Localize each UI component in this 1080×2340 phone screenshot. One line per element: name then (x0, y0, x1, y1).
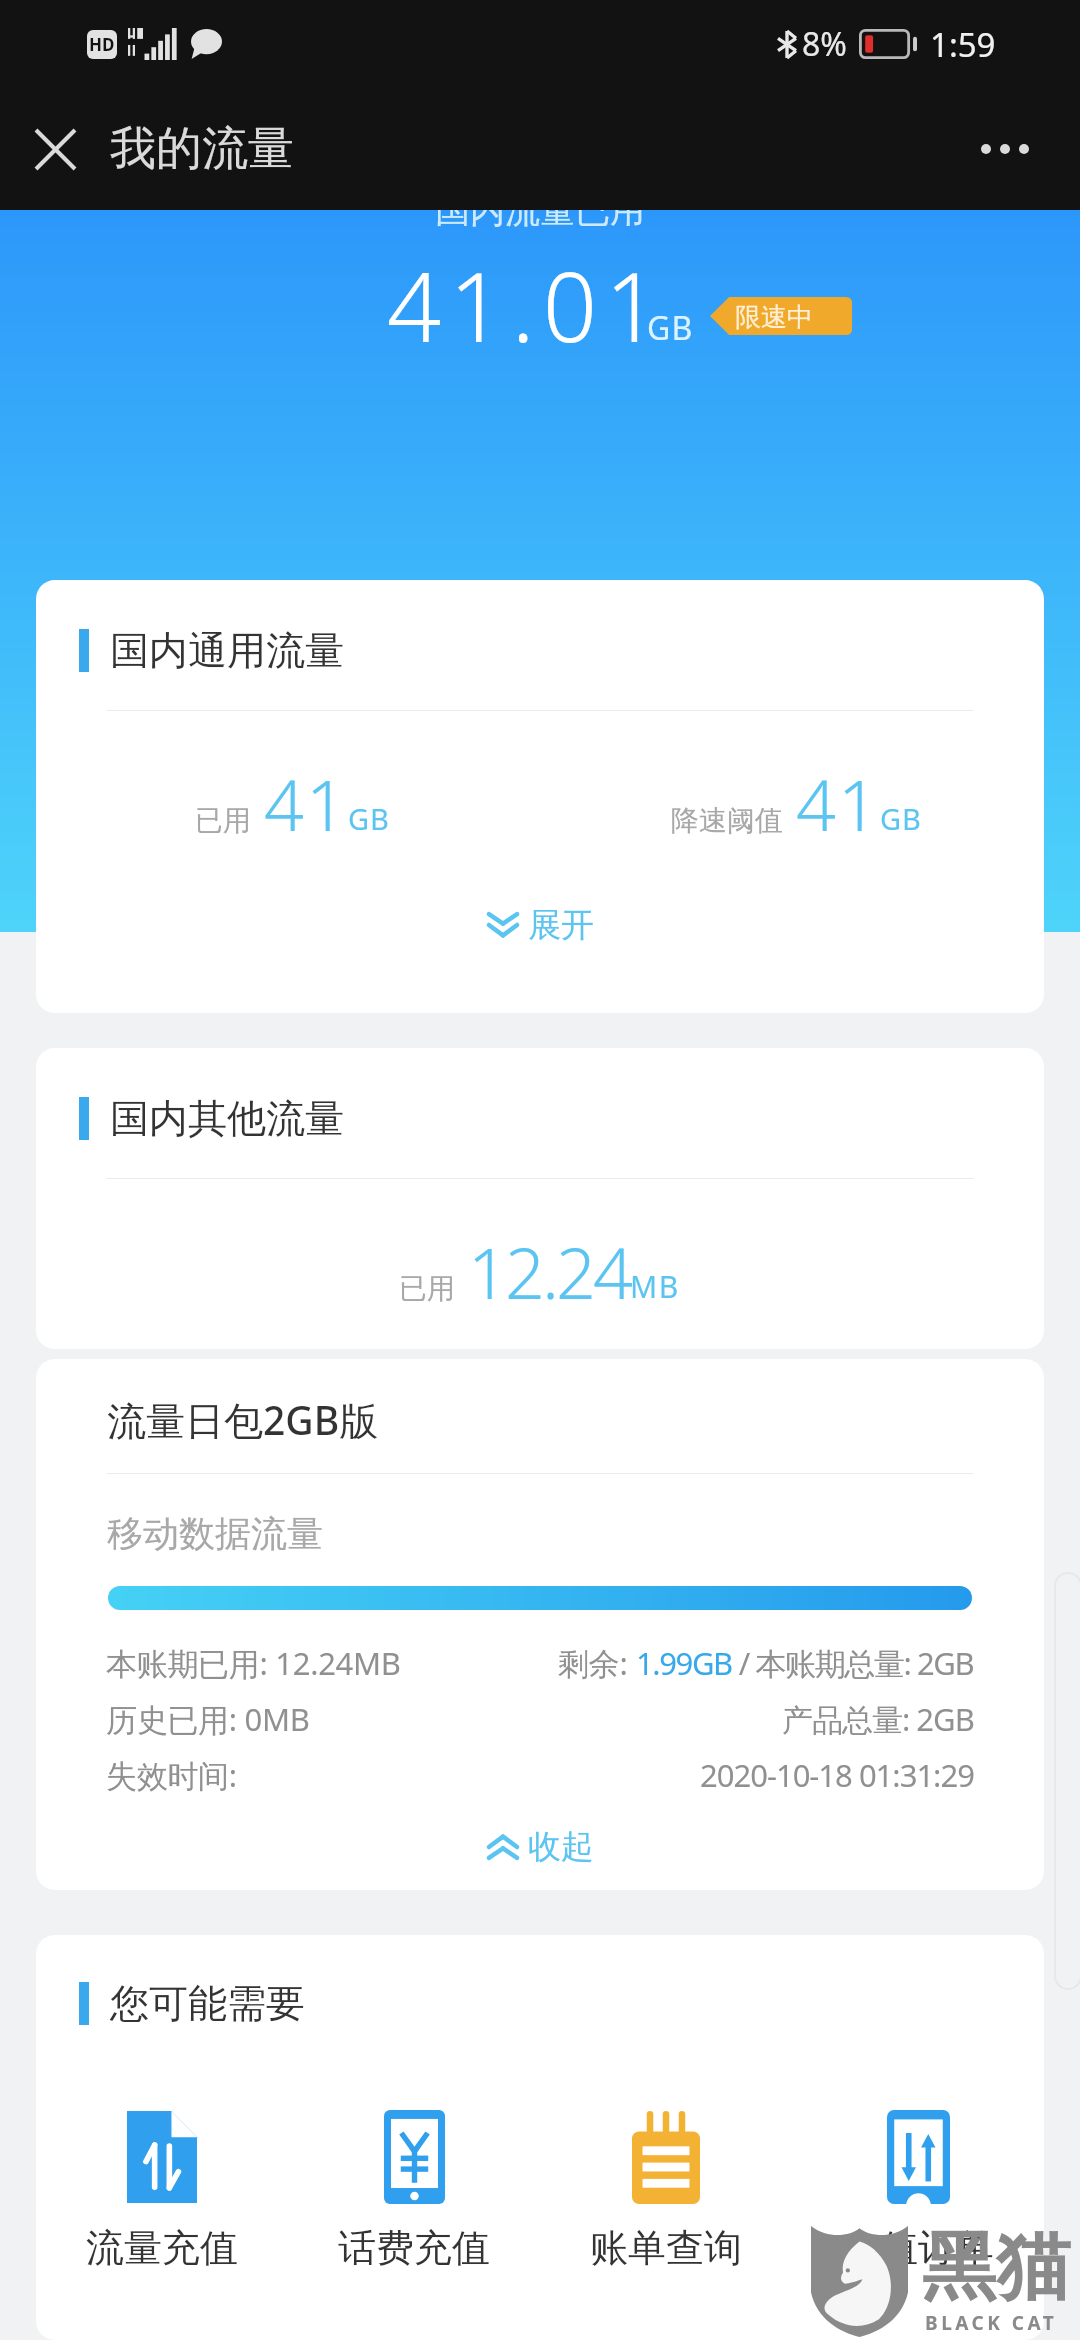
staticText: 移动数据流量 (107, 1511, 323, 1556)
button[interactable]: 收起 (36, 1822, 1044, 1872)
staticText: 41.01 (387, 240, 668, 369)
staticText: 降速阈值 (671, 803, 783, 838)
staticText: 账单查询 (590, 2224, 742, 2272)
staticText: 限速中 (735, 301, 813, 334)
staticText: 您可能需要 (110, 1979, 305, 2028)
button[interactable]: 充值订单 (792, 2110, 1044, 2272)
staticText: 已用 (195, 803, 251, 838)
staticText: 流量充值 (86, 2224, 238, 2272)
staticText: 展开 (528, 904, 594, 946)
staticText: 产品总量: 2GB (782, 1698, 974, 1740)
staticText: 本账期已用: 12.24MB (106, 1642, 401, 1684)
button[interactable]: 展开 (36, 900, 1044, 950)
staticText: 国内流量已用 (435, 188, 645, 232)
staticText: 流量日包2GB版 (107, 1393, 379, 1446)
staticText: 黑猫 (922, 2221, 1070, 2314)
staticText: 8% (802, 22, 847, 66)
staticText: 失效时间: (106, 1754, 237, 1796)
button[interactable]: 话费充值 (288, 2110, 540, 2272)
button[interactable]: Close (16, 110, 94, 188)
staticText: 12.24 (468, 1224, 630, 1319)
staticText: 我的流量 (110, 120, 294, 178)
staticText: 国内其他流量 (110, 1094, 344, 1143)
staticText: 41 (796, 756, 880, 851)
button[interactable]: More options (966, 110, 1044, 188)
staticText: 已用 (399, 1271, 455, 1306)
staticText: HD (89, 33, 115, 56)
button[interactable]: 账单查询 (540, 2110, 792, 2272)
staticText: 国内通用流量 (110, 626, 344, 675)
staticText: 收起 (528, 1826, 594, 1868)
staticText: 充值订单 (842, 2224, 994, 2272)
staticText: 剩余: (558, 1642, 636, 1684)
staticText: GB (647, 306, 694, 350)
staticText: 1:59 (930, 22, 996, 67)
staticText: GB (880, 799, 922, 838)
staticText: GB (348, 799, 390, 838)
staticText: 1.99GB (636, 1642, 732, 1684)
staticText: 话费充值 (338, 2224, 490, 2272)
staticText: MB (630, 1266, 680, 1307)
staticText: 41 (264, 756, 348, 851)
staticText: BLACK CAT (925, 2310, 1058, 2336)
staticText: 历史已用: 0MB (106, 1698, 310, 1740)
staticText: / 本账期总量: 2GB (732, 1642, 974, 1684)
button[interactable]: 流量充值 (36, 2110, 288, 2272)
staticText: 2020-10-18 01:31:29 (700, 1754, 974, 1796)
